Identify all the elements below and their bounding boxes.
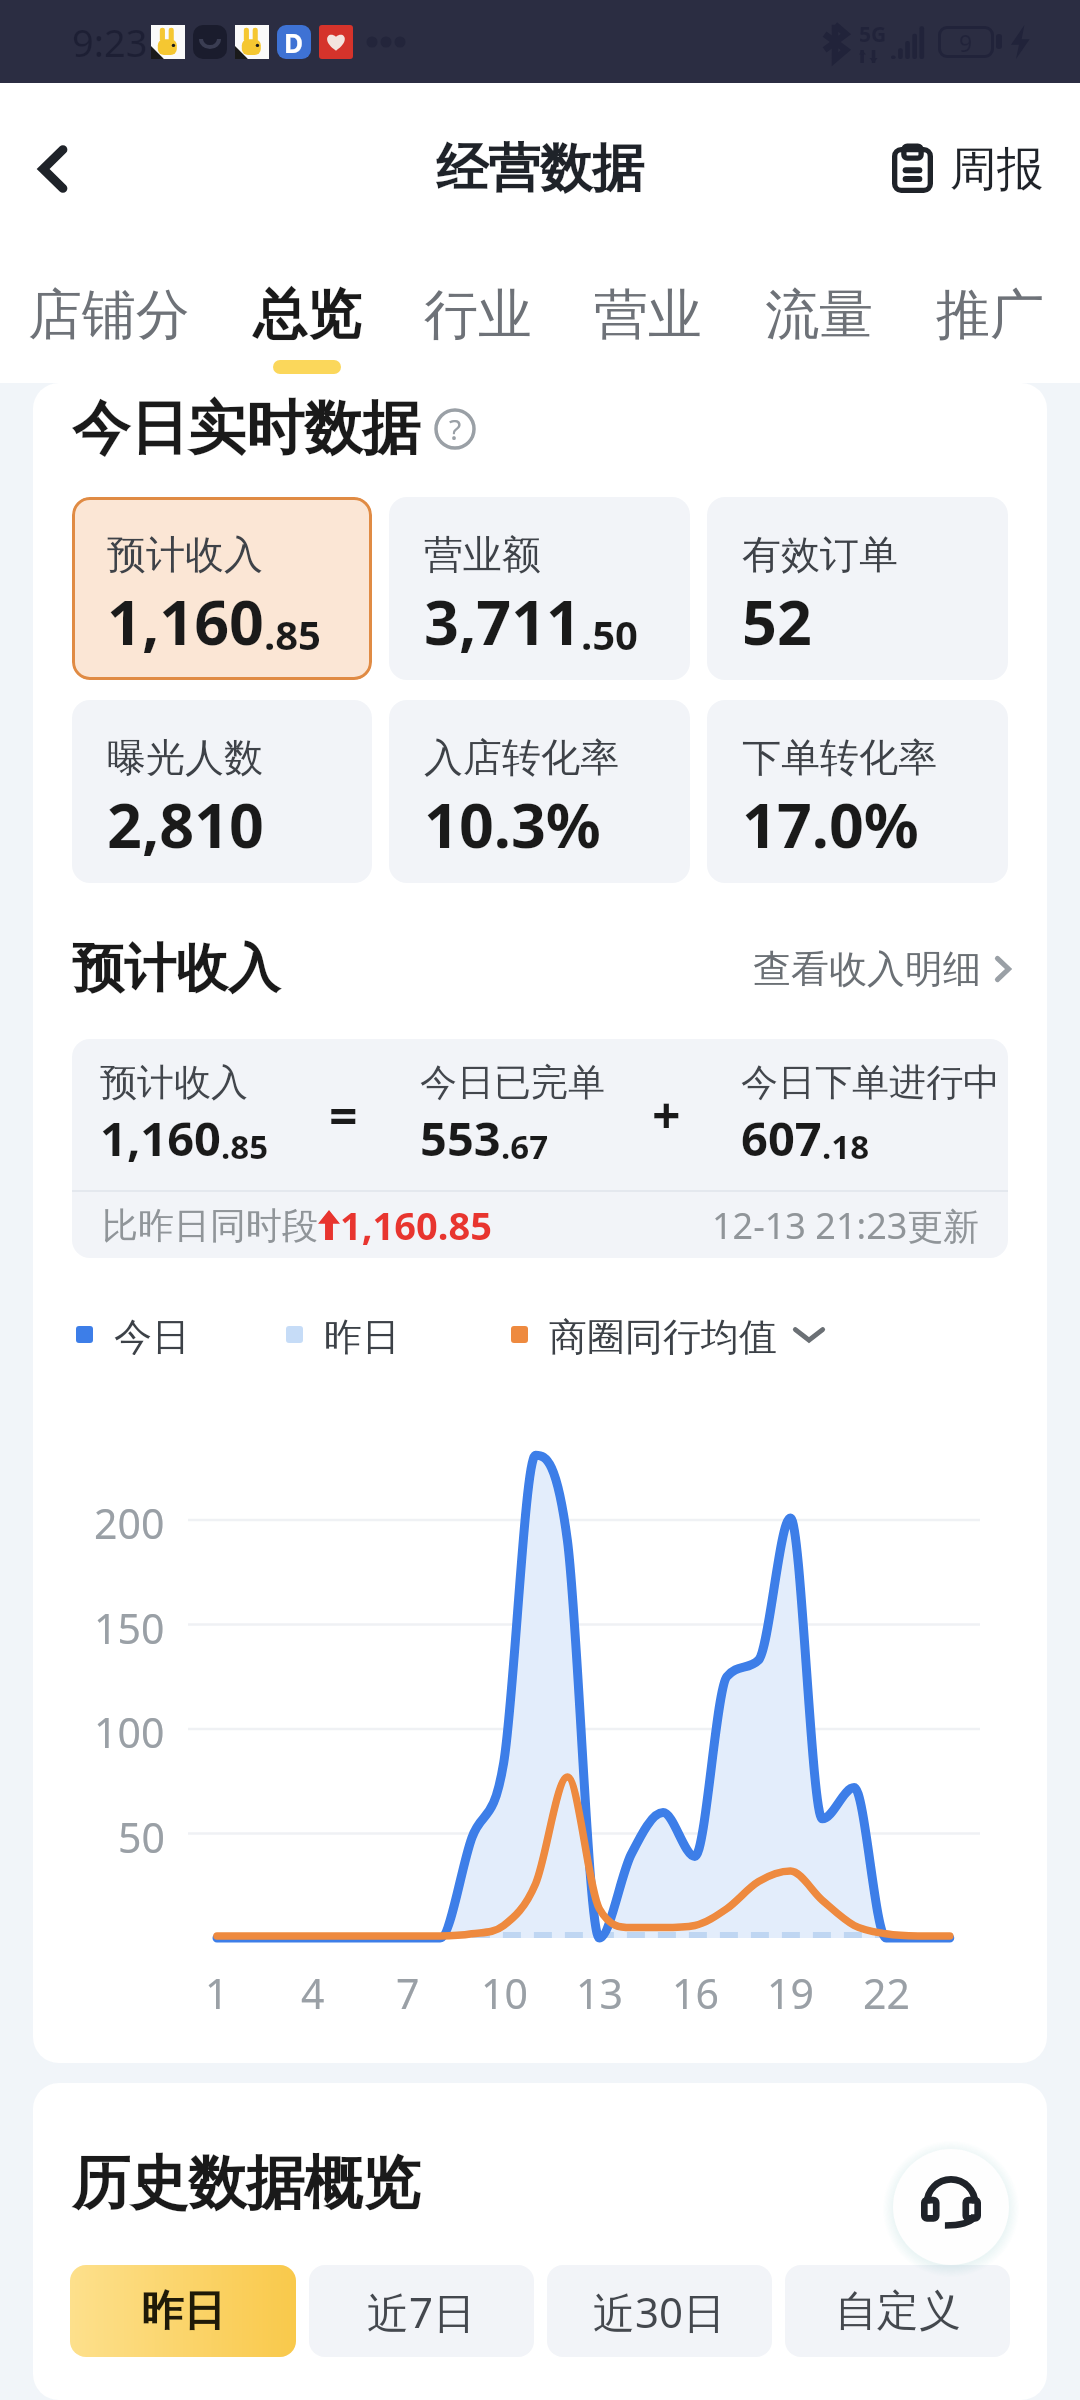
staticText: 营业: [594, 281, 702, 349]
button[interactable]: 入店转化率: [389, 700, 690, 883]
staticText: .18: [822, 1124, 870, 1169]
button[interactable]: 下单转化率: [707, 700, 1008, 883]
staticText: 今日实时数据: [72, 392, 420, 465]
staticText: 预计收入: [72, 936, 280, 1002]
staticText: 5G: [859, 20, 887, 49]
staticText: 1,160.85: [340, 1199, 492, 1251]
staticText: 553: [420, 1106, 501, 1170]
staticText: 13: [576, 1965, 623, 2021]
staticText: 607: [741, 1106, 822, 1170]
staticText: .85: [221, 1124, 269, 1169]
button[interactable]: 查看收入明细: [753, 945, 1011, 993]
staticText: 9: [959, 27, 973, 58]
staticText: 昨日: [141, 2285, 225, 2338]
button[interactable]: 流量: [763, 255, 875, 360]
button[interactable]: 有效订单: [707, 497, 1008, 680]
staticText: +: [652, 1081, 681, 1149]
staticText: 4: [301, 1965, 325, 2021]
staticText: 近30日: [593, 2283, 726, 2340]
staticText: 曝光人数: [107, 733, 263, 782]
button[interactable]: 总览: [251, 255, 363, 374]
staticText: 总览: [253, 281, 361, 349]
staticText: .85: [264, 607, 321, 661]
staticText: 近7日: [367, 2283, 476, 2340]
staticText: 入店转化率: [424, 733, 619, 782]
staticText: 22: [863, 1965, 910, 2021]
button[interactable]: 推广: [934, 255, 1046, 360]
button[interactable]: 曝光人数: [72, 700, 372, 883]
staticText: 1: [205, 1965, 229, 2021]
staticText: 比昨日同时段: [102, 1203, 318, 1248]
button[interactable]: 周报: [892, 140, 1044, 199]
staticText: 150: [94, 1600, 165, 1656]
staticText: 1,160: [107, 580, 264, 663]
staticText: 12-13 21:23更新: [712, 1201, 980, 1250]
staticText: 17.0%: [742, 783, 919, 866]
staticText: 16: [672, 1965, 719, 2021]
staticText: 商圈同行均值: [549, 1313, 777, 1355]
staticText: .50: [581, 607, 638, 661]
staticText: 下单转化率: [742, 733, 937, 782]
staticText: 预计收入: [100, 1059, 248, 1106]
staticText: 10: [481, 1965, 528, 2021]
staticText: 3,711: [424, 580, 581, 663]
staticText: 50: [118, 1809, 165, 1865]
button[interactable]: 店铺分: [26, 255, 192, 360]
staticText: 今日已完单: [420, 1059, 605, 1106]
staticText: D: [284, 25, 304, 59]
staticText: 200: [94, 1495, 165, 1551]
button[interactable]: 近7日: [309, 2265, 534, 2357]
button[interactable]: Back: [22, 138, 84, 200]
staticText: 10.3%: [424, 783, 601, 866]
button[interactable]: 营业额: [389, 497, 690, 680]
staticText: ?: [449, 410, 462, 448]
staticText: 1,160: [100, 1106, 221, 1170]
staticText: 7: [396, 1965, 420, 2021]
staticText: 行业: [424, 281, 532, 349]
staticText: 2,810: [107, 783, 264, 866]
staticText: 19: [767, 1965, 814, 2021]
staticText: .67: [501, 1124, 549, 1169]
staticText: 推广: [936, 281, 1044, 349]
button[interactable]: 营业: [592, 255, 704, 360]
button[interactable]: Customer support: [893, 2149, 1009, 2265]
staticText: 有效订单: [742, 530, 898, 579]
staticText: 周报: [950, 140, 1044, 199]
staticText: 经营数据: [436, 136, 644, 202]
button[interactable]: 预计收入: [72, 497, 372, 680]
staticText: 查看收入明细: [753, 945, 981, 993]
button[interactable]: 行业: [422, 255, 534, 360]
staticText: 历史数据概览: [72, 2147, 420, 2220]
staticText: 52: [742, 580, 812, 663]
staticText: 今日: [114, 1313, 190, 1355]
button[interactable]: More: [792, 1323, 826, 1345]
staticText: 昨日: [324, 1313, 400, 1355]
staticText: 今日下单进行中: [741, 1059, 1000, 1106]
staticText: 预计收入: [107, 530, 263, 579]
button[interactable]: Help: [434, 408, 476, 450]
staticText: 9:23: [72, 16, 148, 68]
button[interactable]: 自定义: [785, 2265, 1010, 2357]
staticText: =: [329, 1081, 358, 1149]
button[interactable]: 昨日: [70, 2265, 296, 2357]
button[interactable]: 近30日: [547, 2265, 772, 2357]
staticText: 100: [94, 1704, 165, 1760]
staticText: 自定义: [835, 2285, 961, 2338]
staticText: 流量: [765, 281, 873, 349]
staticText: 店铺分: [28, 281, 190, 349]
staticText: 营业额: [424, 530, 541, 579]
